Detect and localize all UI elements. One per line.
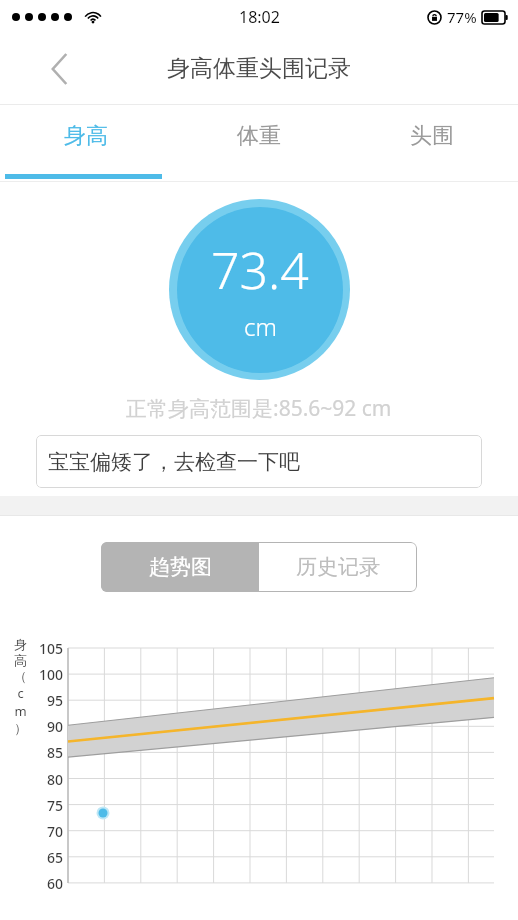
button[interactable]: Back (42, 51, 78, 87)
staticText: 高 (14, 652, 27, 668)
staticText: ） (14, 720, 27, 736)
button[interactable]: 历史记录 (259, 542, 417, 592)
button[interactable]: 体重 (172, 105, 345, 181)
staticText: 身 (14, 636, 27, 652)
staticText: 100 (39, 665, 64, 684)
button[interactable]: 趋势图 (101, 542, 259, 592)
staticText: 60 (47, 874, 64, 893)
staticText: cm (244, 310, 277, 343)
staticText: c (17, 684, 24, 702)
staticText: m (14, 702, 27, 720)
button[interactable]: 宝宝偏矮了，去检查一下吧 (36, 435, 482, 488)
staticText: 80 (47, 770, 64, 789)
staticText: 头围 (410, 122, 454, 150)
staticText: 95 (47, 691, 64, 710)
staticText: 105 (39, 639, 64, 658)
staticText: 65 (47, 848, 64, 867)
staticText: 75 (47, 796, 64, 815)
staticText: 18:02 (239, 6, 280, 28)
staticText: 85 (47, 743, 64, 762)
button[interactable]: 头围 (345, 105, 518, 181)
staticText: 趋势图 (149, 554, 212, 580)
staticText: 历史记录 (296, 554, 380, 580)
staticText: 身高体重头围记录 (167, 54, 351, 83)
staticText: 77% (447, 7, 477, 27)
staticText: 90 (47, 717, 64, 736)
staticText: 宝宝偏矮了，去检查一下吧 (48, 449, 300, 475)
staticText: 身高 (64, 122, 108, 150)
staticText: 70 (47, 822, 64, 841)
staticText: 体重 (237, 122, 281, 150)
staticText: 73.4 (211, 236, 309, 304)
staticText: （ (14, 668, 27, 684)
button[interactable]: 身高 (0, 105, 172, 181)
staticText: 正常身高范围是:85.6~92 cm (126, 394, 392, 423)
